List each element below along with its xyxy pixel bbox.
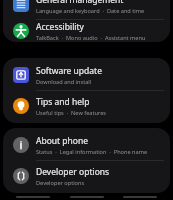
button[interactable]: Accessibility: [3, 20, 170, 42]
staticText: Download and install: [36, 78, 92, 86]
button[interactable]: General management: [3, 0, 170, 19]
staticText: Tips and help: [36, 96, 90, 108]
button[interactable]: About phone: [3, 130, 170, 160]
button[interactable]: Tips and help: [3, 91, 170, 121]
staticText: Status · Legal information · Phone name: [36, 148, 148, 156]
staticText: About phone: [36, 135, 89, 147]
staticText: TalkBack · Mono audio · Assistant menu: [36, 34, 146, 42]
staticText: General management: [36, 0, 124, 6]
staticText: Software update: [36, 65, 102, 77]
button[interactable]: Developer options: [3, 161, 170, 191]
button[interactable]: Back: [120, 193, 160, 200]
staticText: Accessibility: [36, 21, 84, 33]
staticText: Developer options: [36, 166, 110, 178]
staticText: Developer options: [36, 179, 85, 187]
button[interactable]: Software update: [3, 60, 170, 90]
button[interactable]: Recents: [13, 193, 53, 200]
button[interactable]: Home: [67, 193, 107, 200]
staticText: Useful tips · New features: [36, 109, 106, 117]
staticText: Language and keyboard · Date and time: [36, 7, 145, 15]
